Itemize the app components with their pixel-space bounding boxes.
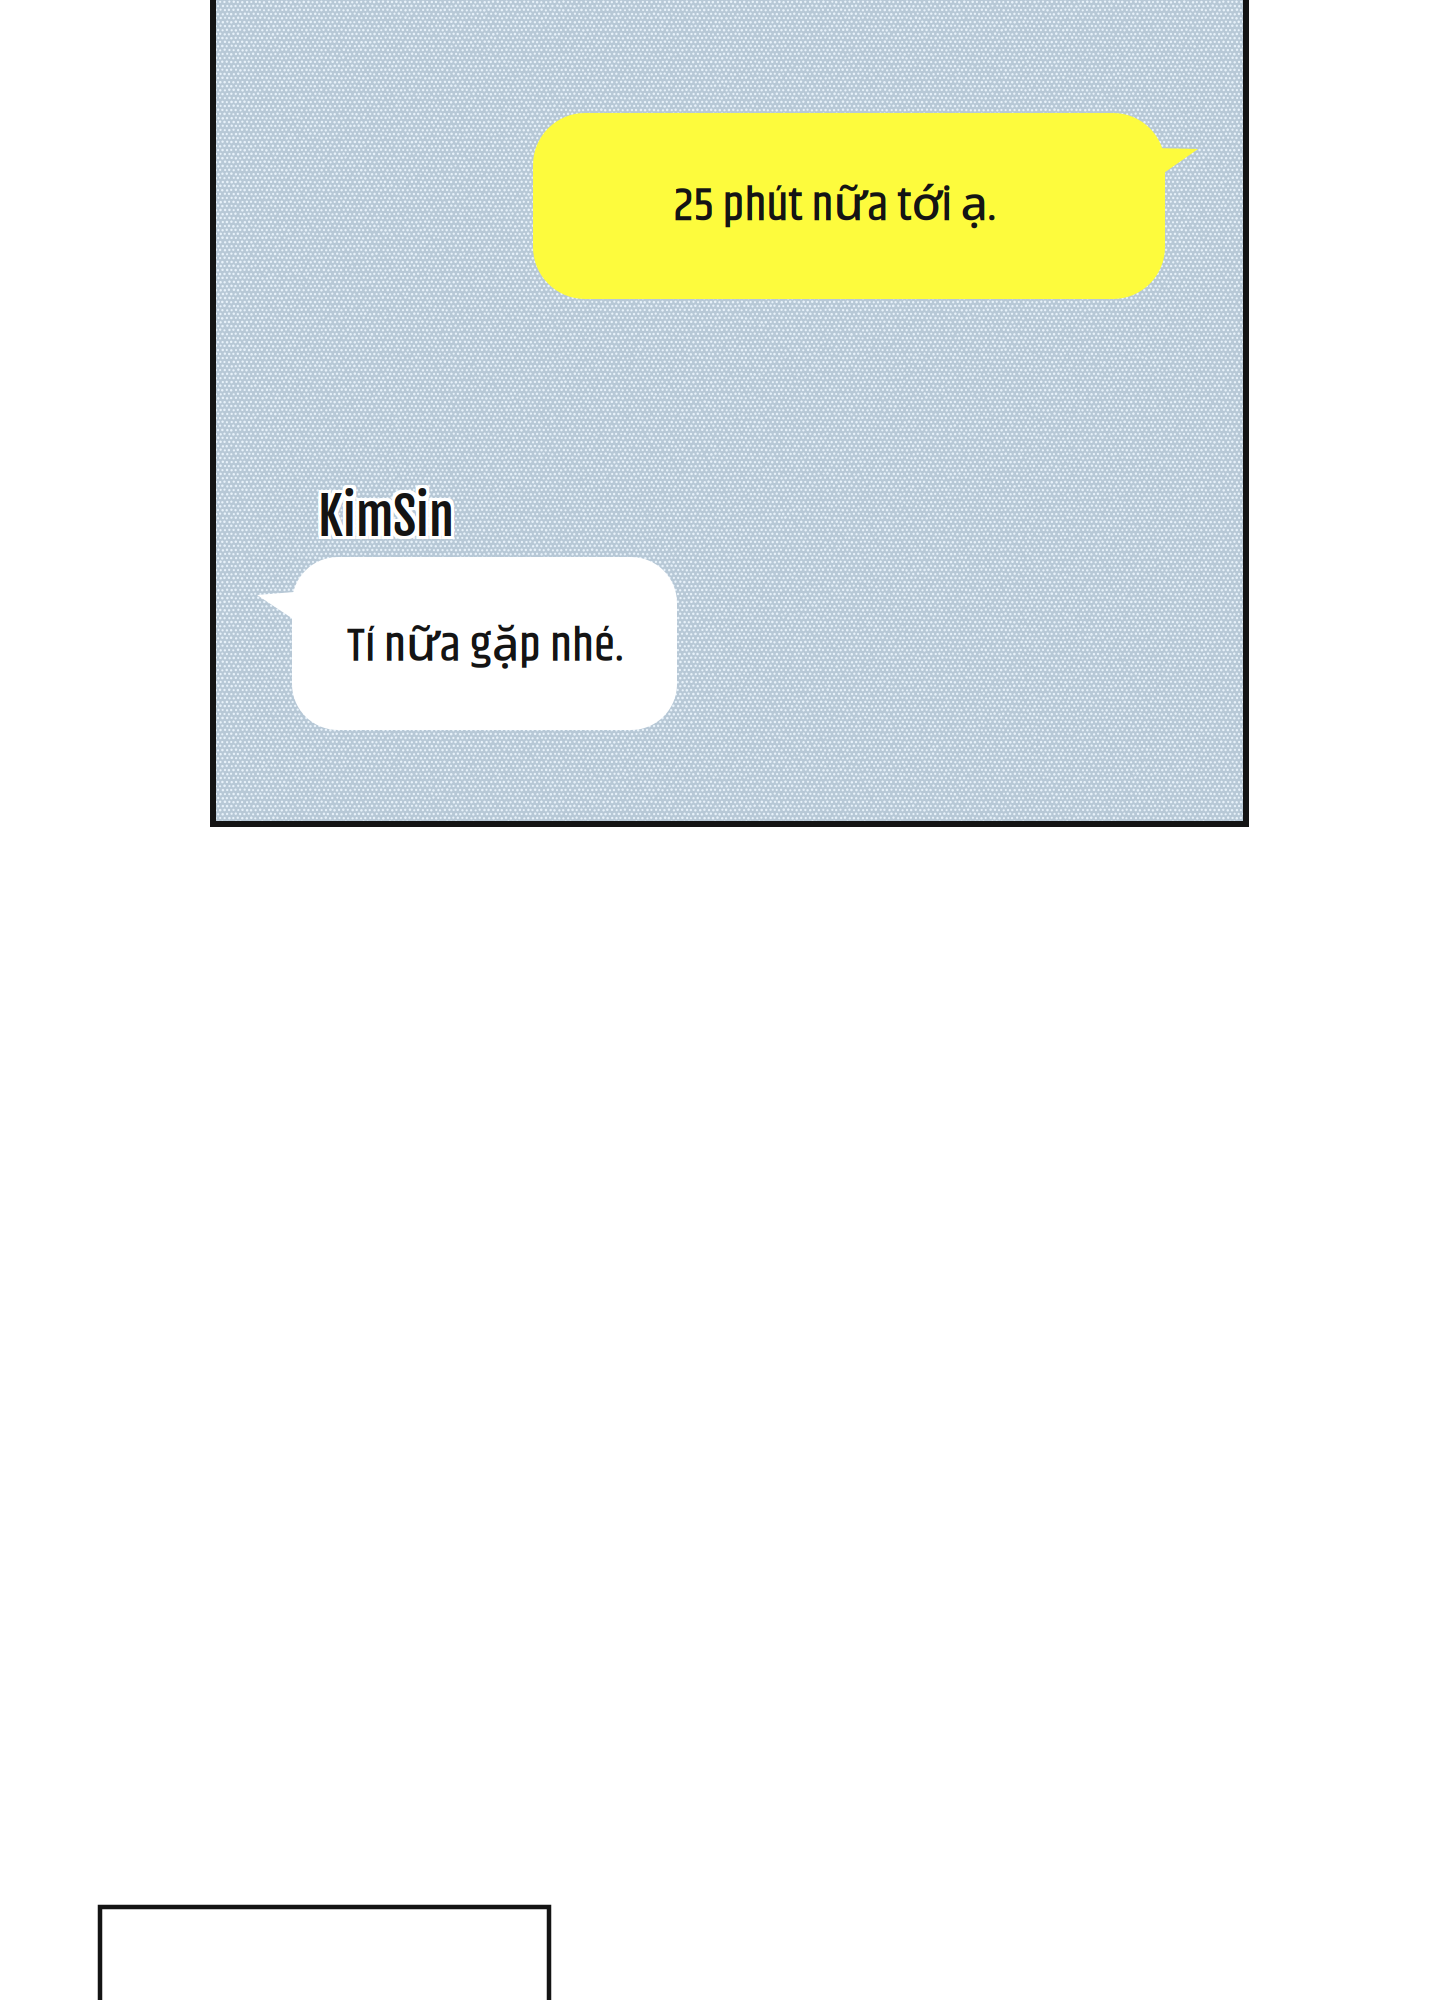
button[interactable]: Comic panel: KimSin chat [210, 0, 1249, 827]
staticText: KimSin [315, 488, 451, 552]
staticText: KimSin [321, 485, 457, 549]
staticText: KimSin [315, 485, 451, 549]
staticText: KimSin [321, 482, 457, 546]
staticText: 25 phút nữa tới ạ. [673, 169, 996, 243]
button[interactable]: Next comic panel [100, 1907, 549, 2000]
staticText: KimSin [318, 488, 454, 552]
staticText: KimSin [321, 488, 457, 552]
staticText: Tí nữa gặp nhé. [347, 609, 624, 684]
staticText: KimSin [315, 482, 451, 546]
staticText: KimSin [318, 482, 454, 546]
staticText: KimSin [318, 485, 454, 549]
